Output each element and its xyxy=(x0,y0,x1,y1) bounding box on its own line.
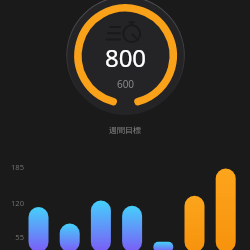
staticText: 600 xyxy=(66,77,185,91)
staticText: 800 xyxy=(66,41,185,74)
staticText: 55 xyxy=(0,232,24,242)
staticText: 185 xyxy=(0,162,24,172)
staticText: 120 xyxy=(0,198,24,208)
button[interactable]: 週間アクティビティ グラフ xyxy=(0,150,250,250)
staticText: 週間目標 xyxy=(0,125,250,135)
button[interactable]: 週間目標 800 / 600 xyxy=(66,0,185,115)
